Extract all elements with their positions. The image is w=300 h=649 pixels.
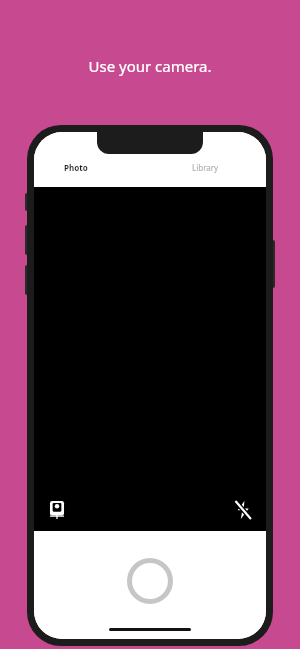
staticText: Use your camera. bbox=[88, 56, 212, 76]
staticText: Library bbox=[192, 162, 219, 173]
button[interactable]: Photo bbox=[34, 158, 150, 177]
staticText: Photo bbox=[64, 162, 88, 173]
button[interactable]: Portrait mode bbox=[44, 497, 70, 523]
button[interactable]: Library bbox=[150, 158, 266, 177]
button[interactable]: Flash off bbox=[230, 497, 256, 523]
button[interactable]: Shutter bbox=[127, 558, 173, 604]
